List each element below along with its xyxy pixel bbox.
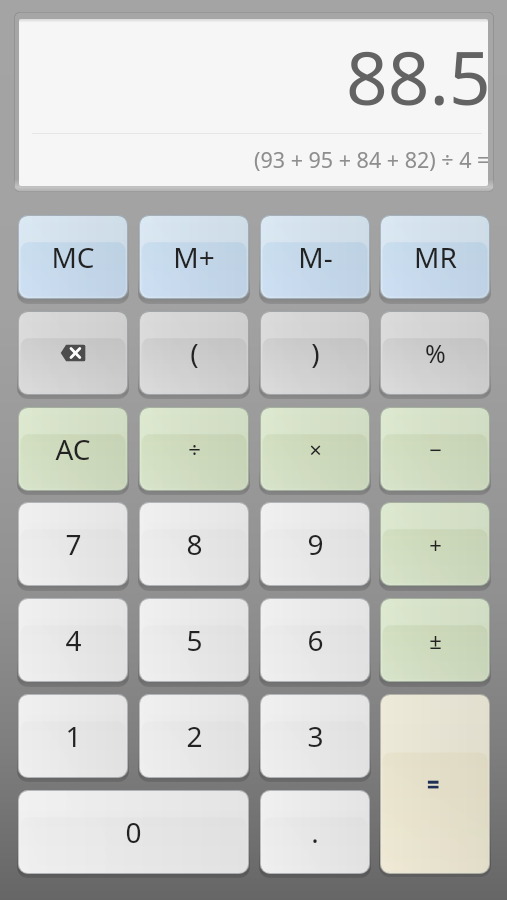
button[interactable]: M- [260, 215, 370, 299]
button[interactable]: ± [380, 598, 490, 682]
staticText: 8 [186, 525, 203, 563]
staticText: 88.5 [346, 27, 488, 126]
button[interactable]: − [380, 407, 490, 491]
staticText: 7 [65, 525, 82, 563]
staticText: − [429, 434, 442, 464]
button[interactable]: . [260, 790, 370, 874]
staticText: ÷ [188, 434, 201, 464]
button[interactable]: × [260, 407, 370, 491]
staticText: 3 [307, 717, 324, 755]
staticText: M+ [173, 238, 215, 276]
button[interactable]: 0 [18, 790, 249, 874]
staticText: ( [190, 334, 199, 372]
staticText: % [425, 336, 446, 370]
button[interactable]: 9 [260, 502, 370, 586]
button[interactable]: 6 [260, 598, 370, 682]
button[interactable]: AC [18, 407, 128, 491]
button[interactable]: 3 [260, 694, 370, 778]
staticText: 6 [307, 621, 324, 659]
button[interactable]: Backspace [18, 311, 128, 395]
staticText: MR [414, 238, 457, 276]
staticText: . [311, 813, 319, 851]
button[interactable]: % [380, 311, 490, 395]
button[interactable]: ) [260, 311, 370, 395]
button[interactable]: M+ [139, 215, 249, 299]
staticText: MC [51, 238, 95, 276]
button[interactable]: ÷ [139, 407, 249, 491]
staticText: × [309, 434, 322, 464]
staticText: 4 [65, 621, 82, 659]
staticText: 9 [307, 525, 324, 563]
staticText: + [429, 529, 442, 559]
button[interactable]: 7 [18, 502, 128, 586]
button[interactable]: Equals [380, 694, 490, 874]
staticText: AC [55, 430, 91, 468]
button[interactable]: + [380, 502, 490, 586]
button[interactable]: MC [18, 215, 128, 299]
button[interactable]: 8 [139, 502, 249, 586]
button[interactable]: 2 [139, 694, 249, 778]
button[interactable]: ( [139, 311, 249, 395]
staticText: 1 [65, 717, 82, 755]
staticText: 2 [186, 717, 203, 755]
staticText: (93 + 95 + 84 + 82) ÷ 4 = [254, 145, 488, 174]
button[interactable]: 5 [139, 598, 249, 682]
staticText: ) [311, 334, 320, 372]
staticText: ± [429, 625, 442, 655]
button[interactable]: MR [380, 215, 490, 299]
staticText: 5 [186, 621, 203, 659]
staticText: 0 [125, 813, 142, 851]
button[interactable]: 1 [18, 694, 128, 778]
button[interactable]: 4 [18, 598, 128, 682]
staticText: M- [298, 238, 333, 276]
